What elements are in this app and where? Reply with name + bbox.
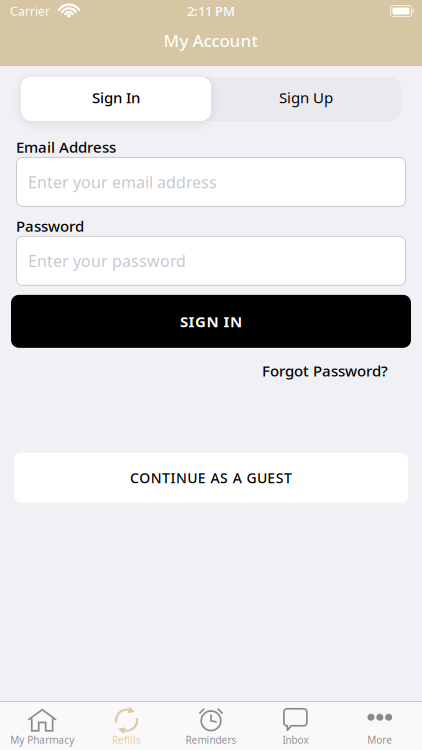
button[interactable]: Reminders (169, 705, 253, 747)
staticText: My Pharmacy (10, 733, 74, 747)
staticText: Sign In (92, 87, 140, 107)
staticText: SIGN IN (180, 311, 242, 331)
button[interactable]: My Pharmacy (0, 705, 84, 747)
staticText: Enter your password (28, 250, 186, 271)
button[interactable]: Sign Up (211, 87, 401, 110)
button[interactable]: SIGN IN (11, 295, 411, 348)
staticText: Password (16, 216, 84, 236)
button[interactable]: Refills (84, 705, 169, 747)
button[interactable]: Forgot Password? (262, 361, 388, 381)
staticText: Inbox (282, 733, 308, 747)
staticText: Refills (112, 733, 141, 747)
button[interactable]: Sign In (21, 77, 211, 121)
staticText: Forgot Password? (262, 361, 388, 381)
staticText: CONTINUE AS A GUEST (130, 468, 292, 487)
staticText: Email Address (16, 137, 116, 157)
button[interactable]: CONTINUE AS A GUEST (14, 453, 408, 503)
staticText: Reminders (185, 733, 236, 747)
staticText: More (367, 733, 392, 747)
button[interactable]: More (338, 705, 422, 747)
staticText: Carrier (10, 3, 50, 19)
staticText: 2:11 PM (187, 2, 235, 20)
staticText: My Account (163, 29, 258, 52)
button[interactable]: Inbox (253, 705, 338, 747)
staticText: Enter your email address (28, 171, 217, 192)
staticText: Sign Up (279, 87, 333, 107)
